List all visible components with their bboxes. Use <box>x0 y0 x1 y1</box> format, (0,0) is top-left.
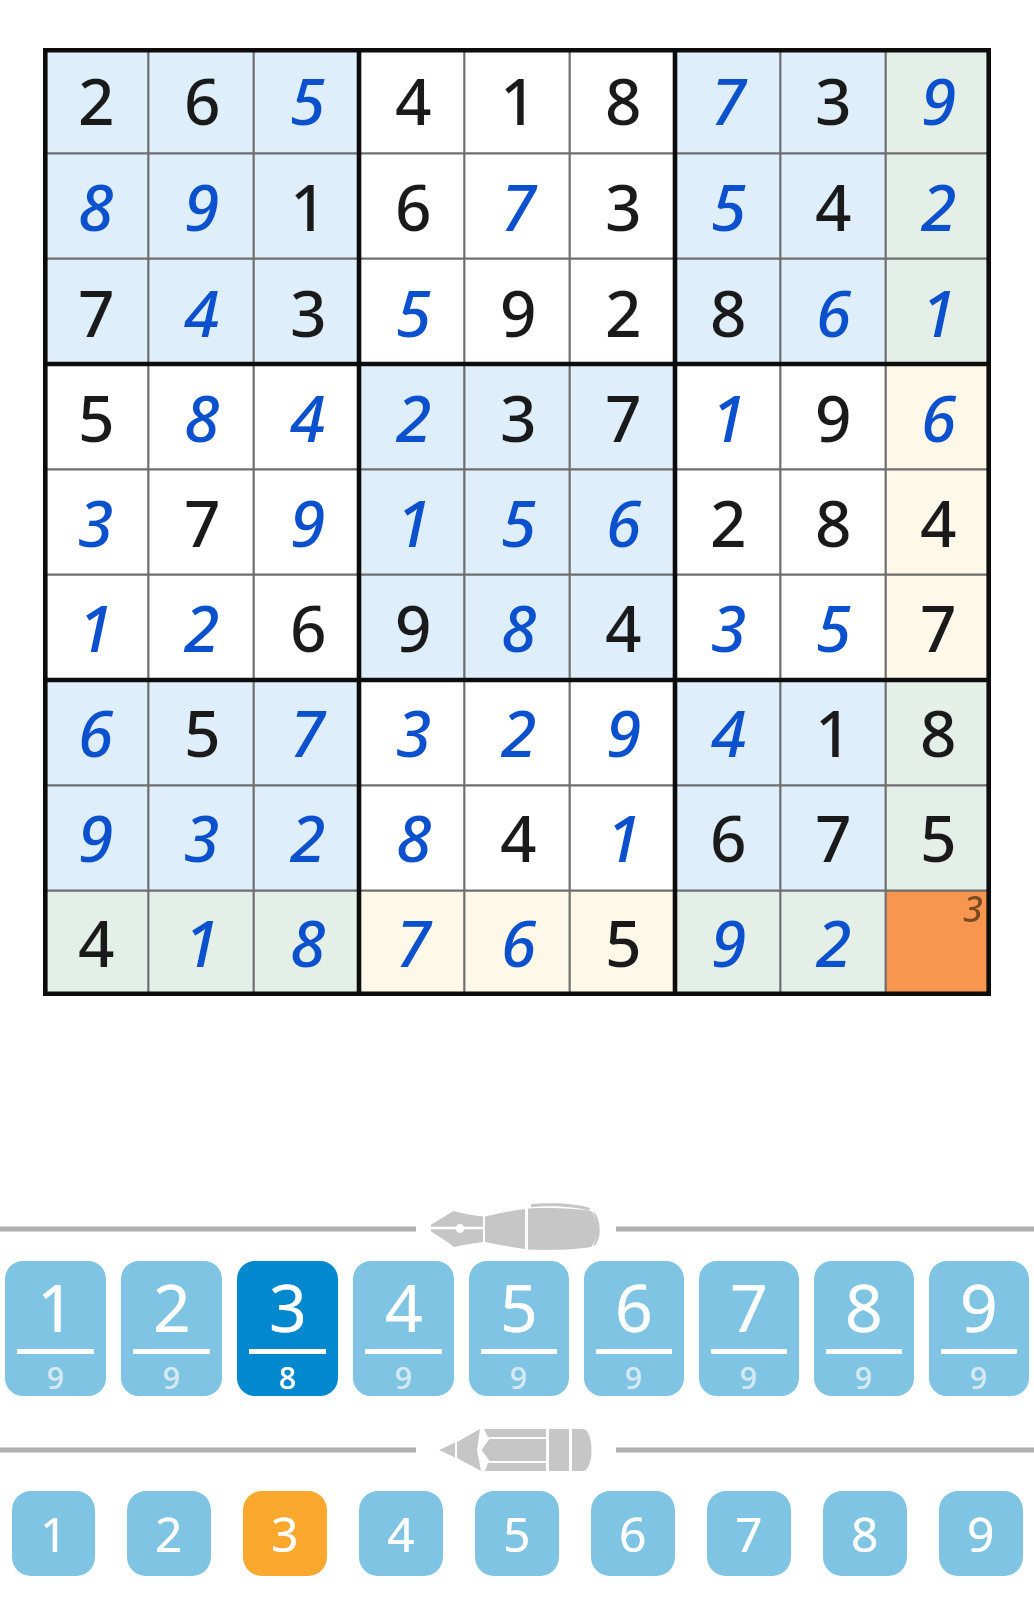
button[interactable]: Pencil mode <box>0 1426 1034 1474</box>
button[interactable]: 8 <box>814 1261 914 1396</box>
button[interactable]: 6 <box>255 576 361 681</box>
button[interactable]: 6 <box>886 366 991 471</box>
button[interactable]: 9 <box>676 891 781 996</box>
button[interactable]: 4 <box>781 154 886 260</box>
button[interactable]: 9 <box>886 48 991 154</box>
button[interactable]: 4 <box>255 366 361 471</box>
button[interactable]: 7 <box>707 1491 791 1576</box>
button[interactable]: 8 <box>255 891 361 996</box>
button[interactable]: 5 <box>469 1261 569 1396</box>
button[interactable]: 4 <box>359 1491 443 1576</box>
button[interactable]: 1 <box>12 1491 95 1576</box>
button[interactable]: 4 <box>676 681 781 786</box>
button[interactable]: 1 <box>571 786 676 891</box>
button[interactable]: 5 <box>255 48 361 154</box>
button[interactable]: 3 <box>237 1261 338 1396</box>
button[interactable]: 7 <box>255 681 361 786</box>
button[interactable]: 3 <box>781 48 886 154</box>
button[interactable]: 6 <box>466 891 571 996</box>
button[interactable]: 5 <box>43 366 149 471</box>
button[interactable]: 1 <box>886 260 991 366</box>
button[interactable]: 4 <box>149 260 255 366</box>
button[interactable]: 6 <box>571 471 676 576</box>
button[interactable]: 2 <box>127 1491 211 1576</box>
button[interactable]: 1 <box>43 576 149 681</box>
button[interactable]: 9 <box>781 366 886 471</box>
button[interactable]: 8 <box>466 576 571 681</box>
button[interactable]: 8 <box>886 681 991 786</box>
button[interactable]: 8 <box>676 260 781 366</box>
button[interactable]: 2 <box>466 681 571 786</box>
button[interactable]: 8 <box>823 1491 907 1576</box>
button[interactable]: 6 <box>591 1491 675 1576</box>
button[interactable]: 7 <box>676 48 781 154</box>
button[interactable]: 1 <box>5 1261 106 1396</box>
button[interactable]: Pen mode <box>0 1205 1034 1253</box>
button[interactable]: 9 <box>149 154 255 260</box>
button[interactable]: 3 <box>886 891 991 996</box>
button[interactable]: 4 <box>43 891 149 996</box>
button[interactable]: 1 <box>361 471 466 576</box>
button[interactable]: 4 <box>466 786 571 891</box>
button[interactable]: 5 <box>886 786 991 891</box>
button[interactable]: 9 <box>939 1491 1023 1576</box>
button[interactable]: 1 <box>781 681 886 786</box>
button[interactable]: 7 <box>781 786 886 891</box>
button[interactable]: 3 <box>676 576 781 681</box>
button[interactable]: 5 <box>475 1491 559 1576</box>
button[interactable]: 3 <box>255 260 361 366</box>
button[interactable]: 5 <box>149 681 255 786</box>
button[interactable]: 7 <box>466 154 571 260</box>
button[interactable]: 6 <box>781 260 886 366</box>
button[interactable]: 4 <box>886 471 991 576</box>
button[interactable]: 9 <box>255 471 361 576</box>
button[interactable]: 2 <box>121 1261 222 1396</box>
button[interactable]: 7 <box>571 366 676 471</box>
button[interactable]: 9 <box>43 786 149 891</box>
button[interactable]: 7 <box>43 260 149 366</box>
button[interactable]: 2 <box>781 891 886 996</box>
button[interactable]: 4 <box>353 1261 454 1396</box>
button[interactable]: 2 <box>361 366 466 471</box>
button[interactable]: 8 <box>149 366 255 471</box>
button[interactable]: 9 <box>929 1261 1029 1396</box>
button[interactable]: 7 <box>149 471 255 576</box>
button[interactable]: 5 <box>361 260 466 366</box>
button[interactable]: 1 <box>466 48 571 154</box>
button[interactable]: 8 <box>361 786 466 891</box>
button[interactable]: 2 <box>886 154 991 260</box>
button[interactable]: 1 <box>255 154 361 260</box>
button[interactable]: 2 <box>255 786 361 891</box>
button[interactable]: 9 <box>571 681 676 786</box>
button[interactable]: 1 <box>149 891 255 996</box>
button[interactable]: 3 <box>571 154 676 260</box>
button[interactable]: 6 <box>676 786 781 891</box>
button[interactable]: 6 <box>149 48 255 154</box>
button[interactable]: 2 <box>43 48 149 154</box>
button[interactable]: 6 <box>361 154 466 260</box>
button[interactable]: 5 <box>571 891 676 996</box>
button[interactable]: 9 <box>361 576 466 681</box>
button[interactable]: 8 <box>571 48 676 154</box>
button[interactable]: 4 <box>571 576 676 681</box>
button[interactable]: 3 <box>43 471 149 576</box>
button[interactable]: 8 <box>781 471 886 576</box>
button[interactable]: 5 <box>781 576 886 681</box>
button[interactable]: 7 <box>699 1261 799 1396</box>
button[interactable]: 7 <box>361 891 466 996</box>
button[interactable]: 6 <box>584 1261 684 1396</box>
button[interactable]: 2 <box>676 471 781 576</box>
button[interactable]: 2 <box>571 260 676 366</box>
button[interactable]: 2 <box>149 576 255 681</box>
button[interactable]: 3 <box>243 1491 327 1576</box>
button[interactable]: 3 <box>466 366 571 471</box>
button[interactable]: 5 <box>676 154 781 260</box>
button[interactable]: 6 <box>43 681 149 786</box>
button[interactable]: 9 <box>466 260 571 366</box>
button[interactable]: 3 <box>149 786 255 891</box>
button[interactable]: 8 <box>43 154 149 260</box>
button[interactable]: 3 <box>361 681 466 786</box>
button[interactable]: 5 <box>466 471 571 576</box>
button[interactable]: 1 <box>676 366 781 471</box>
button[interactable]: 4 <box>361 48 466 154</box>
